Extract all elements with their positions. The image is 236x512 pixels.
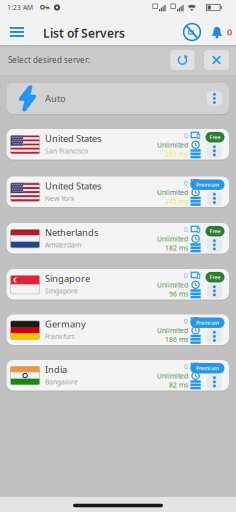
staticText: 0 [227,26,232,38]
button[interactable]: United States [6,129,229,159]
button[interactable]: More options [207,191,222,206]
staticText: Free [209,274,220,281]
staticText: United States [45,180,101,192]
staticText: Free [209,134,220,141]
button[interactable]: Auto [6,83,229,114]
staticText: 0 [184,225,188,234]
button[interactable]: More options [207,375,222,389]
button[interactable]: More options [207,329,222,344]
button[interactable]: United States [6,176,229,207]
staticText: Bangalore [45,377,78,386]
staticText: 283 ms [165,149,188,158]
staticText: List of Servers [43,25,125,41]
staticText: Unlimited [157,234,188,243]
button[interactable]: Notifications [208,24,225,41]
button[interactable]: Netherlands [6,223,229,253]
staticText: 96 ms [169,289,188,298]
staticText: Unlimited [157,280,188,289]
button[interactable]: Singapore [6,269,229,299]
staticText: United States [45,132,101,144]
staticText: 0 [184,131,188,140]
staticText: New York [45,194,75,203]
staticText: San Francisco [45,146,88,155]
button[interactable]: More options [207,144,222,158]
staticText: 0 [184,317,188,326]
staticText: Auto [45,92,66,105]
staticText: Germany [45,318,86,330]
staticText: 0 [184,179,188,188]
staticText: 1:23 AM [7,3,33,12]
staticText: Premium [196,365,219,372]
staticText: Unlimited [157,188,188,197]
staticText: Select desired server: [8,55,90,65]
staticText: Premium [196,319,219,326]
staticText: 82 ms [169,380,188,389]
staticText: Frankfurt [45,332,74,341]
staticText: 182 ms [165,243,188,252]
staticText: 245 ms [165,197,188,206]
staticText: Amsterdam [45,240,81,249]
button[interactable]: Germany [6,314,229,345]
button[interactable]: More options [207,91,222,106]
staticText: 186 ms [165,335,188,344]
staticText: Unlimited [157,326,188,335]
button[interactable]: More options [207,238,222,252]
staticText: Singapore [45,272,90,284]
staticText: Netherlands [45,226,98,238]
staticText: Unlimited [157,140,188,149]
staticText: Unlimited [157,371,188,380]
staticText: India [45,363,67,375]
staticText: 0 [184,362,188,371]
staticText: Premium [196,181,219,188]
button[interactable]: More options [207,284,222,298]
button[interactable]: India [6,360,229,390]
button[interactable]: Menu [6,21,28,43]
button[interactable]: Disable ads [180,20,203,43]
staticText: Singapore [45,286,78,295]
staticText: Free [209,228,220,235]
button[interactable]: Refresh [170,50,194,70]
staticText: 0 [184,271,188,280]
button[interactable]: Close [204,50,229,70]
